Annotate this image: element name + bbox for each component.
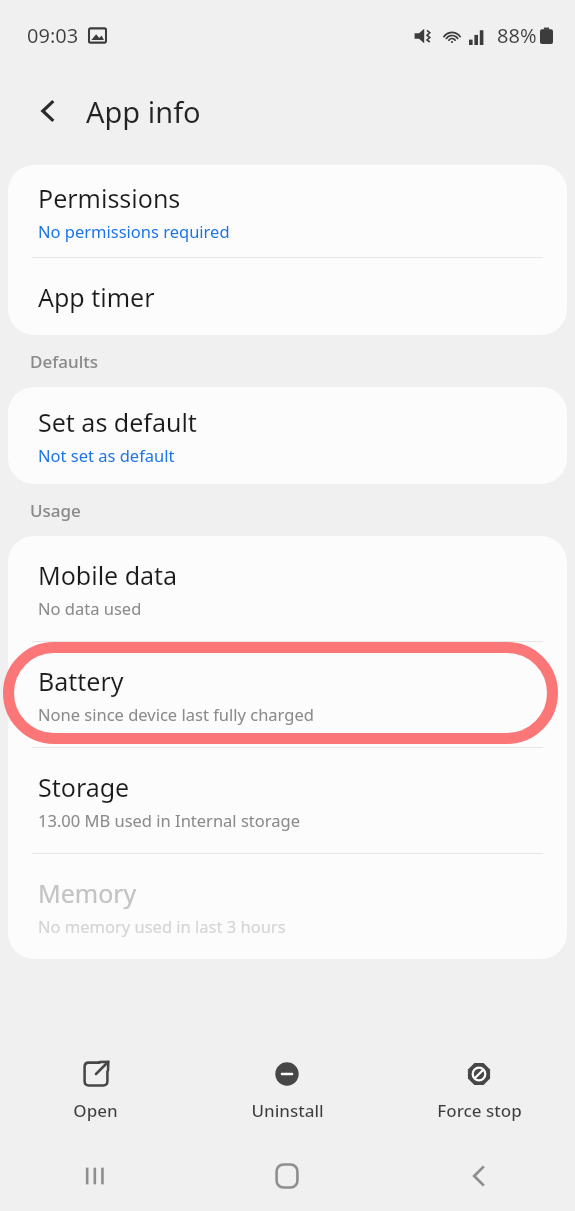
button[interactable]: Memory <box>8 854 567 959</box>
button[interactable]: Storage <box>8 748 567 853</box>
staticText: No permissions required <box>38 220 230 242</box>
button[interactable]: Back <box>22 85 74 137</box>
button[interactable]: Home <box>191 1140 383 1211</box>
staticText: Usage <box>30 499 81 522</box>
button[interactable]: App timer <box>8 258 567 335</box>
staticText: Not set as default <box>38 444 175 466</box>
button[interactable]: Permissions <box>8 165 567 257</box>
staticText: App timer <box>38 280 155 314</box>
staticText: 09:03 <box>27 22 79 49</box>
staticText: Uninstall <box>251 1099 324 1122</box>
staticText: Permissions <box>38 181 181 215</box>
staticText: No memory used in last 3 hours <box>38 915 286 937</box>
button[interactable]: Mobile data <box>8 536 567 641</box>
staticText: 13.00 MB used in Internal storage <box>38 809 300 831</box>
staticText: 88% <box>497 22 537 49</box>
button[interactable]: Set as default <box>8 387 567 484</box>
staticText: App info <box>86 92 201 131</box>
button[interactable]: Force stop <box>383 1040 575 1140</box>
staticText: Storage <box>38 770 130 804</box>
button[interactable]: Open <box>0 1040 191 1140</box>
button[interactable]: Uninstall <box>191 1040 383 1140</box>
staticText: Force stop <box>437 1099 522 1122</box>
staticText: No data used <box>38 597 142 619</box>
staticText: Set as default <box>38 405 197 439</box>
staticText: None since device last fully charged <box>38 703 314 725</box>
button[interactable]: Recents <box>0 1140 191 1211</box>
staticText: Open <box>73 1099 118 1122</box>
staticText: Battery <box>38 664 124 698</box>
staticText: Defaults <box>30 350 98 373</box>
staticText: Mobile data <box>38 558 178 592</box>
staticText: Memory <box>38 876 137 910</box>
button[interactable]: Back <box>383 1140 575 1211</box>
button[interactable]: Battery <box>8 642 567 747</box>
